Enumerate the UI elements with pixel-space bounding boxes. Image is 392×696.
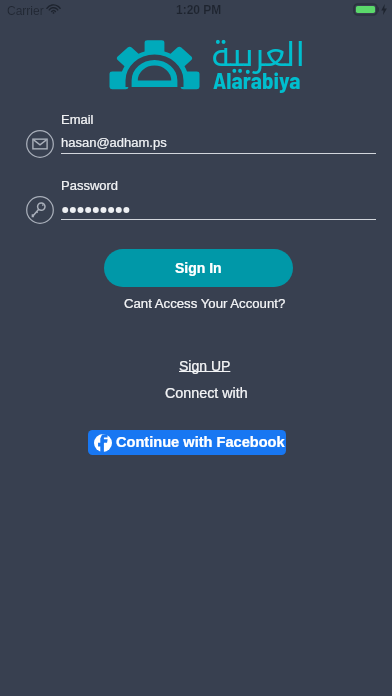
staticText: Password — [61, 178, 119, 193]
button[interactable]: Sign UP — [179, 358, 231, 374]
staticText: العربية — [211, 24, 306, 87]
staticText: Email — [61, 112, 94, 127]
staticText: Sign In — [175, 260, 222, 276]
button[interactable]: Cant Access Your Account? — [124, 296, 286, 311]
staticText: Continue with Facebook — [116, 434, 285, 450]
staticText: Connect with — [165, 385, 248, 401]
staticText: Alarabiya — [213, 66, 301, 94]
staticText: hasan@adham.ps — [61, 135, 167, 150]
staticText: Carrier — [7, 4, 44, 17]
staticText: Cant Access Your Account? — [124, 296, 286, 311]
button[interactable]: Sign In — [104, 249, 293, 287]
button[interactable]: Continue with Facebook — [88, 430, 286, 455]
staticText: Sign UP — [179, 358, 231, 374]
staticText: 1:20 PM — [176, 3, 222, 16]
